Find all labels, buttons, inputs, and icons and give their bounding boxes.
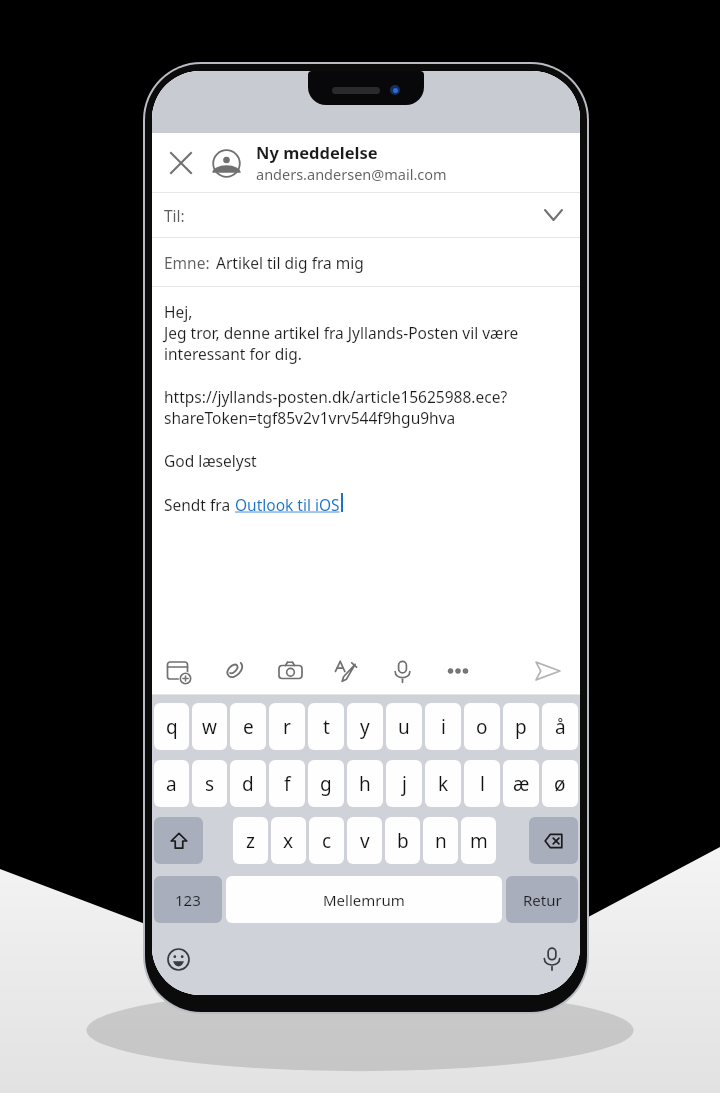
staticText: r — [283, 714, 291, 740]
button[interactable]: h — [347, 760, 383, 807]
staticText: Ny meddelelse — [256, 141, 378, 163]
button[interactable]: Retur — [506, 876, 578, 923]
button[interactable]: t — [308, 703, 344, 750]
staticText: h — [359, 771, 371, 797]
staticText: m — [470, 828, 488, 854]
staticText: p — [515, 714, 527, 740]
staticText: anders.andersen@mail.com — [256, 164, 447, 184]
button[interactable]: Tegn — [328, 653, 364, 689]
button[interactable]: Hej, — [152, 287, 580, 648]
staticText: g — [320, 771, 332, 797]
button[interactable]: z — [233, 817, 268, 864]
staticText: a — [166, 771, 177, 797]
staticText: s — [205, 771, 215, 797]
button[interactable]: v — [347, 817, 382, 864]
staticText: x — [283, 828, 294, 854]
button[interactable]: o — [464, 703, 500, 750]
button[interactable]: g — [308, 760, 344, 807]
button[interactable]: p — [503, 703, 539, 750]
button[interactable]: Diktering — [534, 941, 570, 977]
button[interactable]: Indsæt fil — [160, 653, 196, 689]
staticText: i — [441, 714, 446, 740]
staticText: y — [360, 714, 370, 740]
button[interactable]: u — [386, 703, 422, 750]
button[interactable]: j — [386, 760, 422, 807]
staticText: k — [438, 771, 449, 797]
button[interactable]: Emne: — [152, 238, 580, 286]
button[interactable]: d — [230, 760, 266, 807]
button[interactable]: Flere — [440, 653, 476, 689]
button[interactable]: Slet — [529, 817, 578, 864]
staticText: 123 — [175, 890, 201, 910]
button[interactable]: æ — [503, 760, 539, 807]
button[interactable]: b — [385, 817, 420, 864]
staticText: Retur — [523, 890, 562, 910]
button[interactable]: e — [230, 703, 266, 750]
button[interactable]: c — [309, 817, 344, 864]
staticText: v — [360, 828, 370, 854]
staticText: l — [480, 771, 485, 797]
staticText: Artikel til dig fra mig — [216, 252, 364, 273]
staticText: Til: — [164, 205, 185, 226]
button[interactable]: Outlook til iOS — [235, 494, 340, 515]
staticText: æ — [513, 771, 530, 797]
staticText: q — [166, 714, 178, 740]
button[interactable]: l — [464, 760, 500, 807]
staticText: t — [323, 714, 330, 740]
button[interactable]: Kamera — [272, 653, 308, 689]
staticText: Sendt fra — [164, 494, 235, 515]
button[interactable]: s — [192, 760, 227, 807]
button[interactable]: q — [154, 703, 189, 750]
staticText: God læselyst — [164, 450, 257, 471]
staticText: interessant for dig. — [164, 343, 302, 364]
button[interactable]: 123 — [154, 876, 222, 923]
button[interactable]: Emoji — [160, 941, 196, 977]
button[interactable]: m — [461, 817, 496, 864]
button[interactable]: Udvid modtagere — [536, 198, 570, 232]
staticText: Hej, — [164, 301, 193, 322]
button[interactable]: k — [425, 760, 461, 807]
staticText: o — [476, 714, 488, 740]
button[interactable]: y — [347, 703, 383, 750]
staticText: e — [243, 714, 254, 740]
button[interactable]: a — [154, 760, 189, 807]
staticText: b — [397, 828, 409, 854]
staticText: ø — [554, 771, 566, 797]
staticText: Emne: — [164, 252, 210, 273]
button[interactable]: f — [269, 760, 305, 807]
staticText: u — [398, 714, 410, 740]
staticText: Jeg tror, denne artikel fra Jyllands-Pos… — [164, 322, 519, 343]
button[interactable]: Vedhæft — [216, 653, 252, 689]
button[interactable]: r — [269, 703, 305, 750]
staticText: https://jyllands-posten.dk/article156259… — [164, 386, 508, 407]
staticText: Mellemrum — [323, 890, 405, 910]
staticText: j — [402, 771, 407, 797]
staticText: w — [202, 714, 217, 740]
button[interactable]: x — [271, 817, 306, 864]
button[interactable]: Mellemrum — [226, 876, 502, 923]
staticText: c — [322, 828, 332, 854]
staticText: shareToken=tgf85v2v1vrv544f9hgu9hva — [164, 407, 456, 428]
button[interactable]: Send — [528, 651, 568, 691]
button[interactable]: Luk — [158, 140, 204, 186]
staticText: å — [555, 714, 566, 740]
button[interactable]: Diktér — [384, 653, 420, 689]
button[interactable]: ø — [542, 760, 578, 807]
button[interactable]: Til: — [152, 193, 580, 237]
button[interactable]: å — [542, 703, 578, 750]
staticText: n — [435, 828, 447, 854]
button[interactable]: i — [425, 703, 461, 750]
button[interactable]: Konto — [206, 143, 246, 183]
staticText: z — [246, 828, 255, 854]
button[interactable]: Skift — [154, 817, 203, 864]
button[interactable]: w — [192, 703, 227, 750]
staticText: f — [284, 771, 291, 797]
staticText: d — [242, 771, 254, 797]
button[interactable]: n — [423, 817, 458, 864]
